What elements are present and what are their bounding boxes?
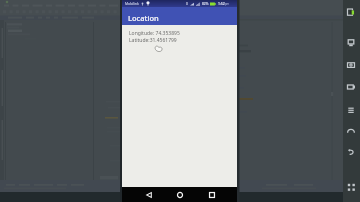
staticText: 82% [202, 2, 209, 6]
staticText: 0 [186, 2, 188, 6]
staticText: 1:52 [218, 1, 225, 6]
button[interactable]: Power [345, 6, 357, 18]
staticText: pm [225, 2, 230, 6]
staticText: Latitude:31.4561799 [129, 37, 177, 44]
button[interactable]: Rotate [345, 59, 357, 71]
button[interactable]: More [345, 181, 357, 193]
button[interactable]: Recents [205, 187, 219, 202]
button[interactable]: Back [142, 187, 156, 202]
button[interactable]: Volume [345, 37, 357, 49]
button[interactable]: Home [345, 125, 357, 137]
staticText: Longitude: 74.353895 [129, 30, 180, 37]
staticText: Mobilink [125, 1, 139, 6]
button[interactable]: Home [173, 187, 187, 202]
button[interactable]: Menu [345, 104, 357, 116]
button[interactable]: Location [122, 7, 237, 25]
button[interactable]: Back [345, 146, 357, 158]
button[interactable]: Screenshot [345, 81, 357, 93]
staticText: Location [128, 13, 159, 23]
